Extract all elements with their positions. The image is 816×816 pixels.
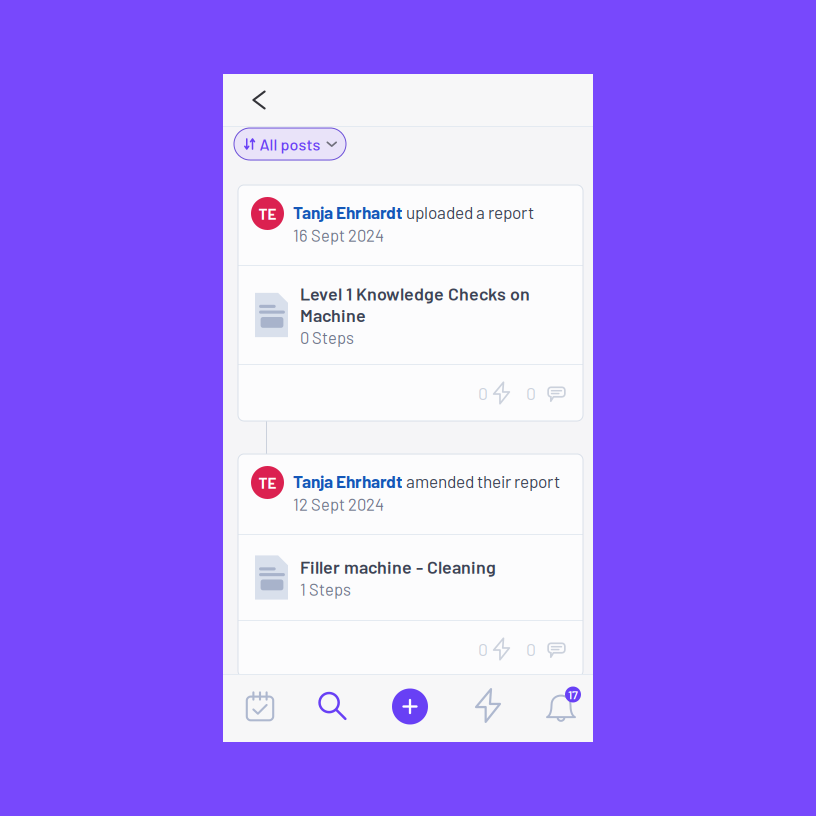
button[interactable]: Create [371, 675, 445, 742]
staticText: 17 [568, 687, 578, 702]
staticText: 0 [478, 382, 488, 403]
staticText: All posts [259, 134, 320, 154]
staticText: TE [258, 473, 276, 492]
staticText: 1 Steps [300, 579, 351, 599]
button[interactable]: Search [297, 675, 371, 742]
staticText: Tanja Ehrhardt uploaded a report [293, 202, 534, 222]
staticText: 0 [478, 638, 488, 659]
button[interactable]: All posts [234, 128, 346, 160]
staticText: Tanja Ehrhardt amended their report [293, 471, 560, 491]
button[interactable]: Notifications [519, 675, 593, 742]
staticText: 12 Sept 2024 [293, 494, 384, 514]
staticText: Filler machine - Cleaning [300, 556, 496, 577]
staticText: Level 1 Knowledge Checks on Machine [300, 283, 530, 325]
button[interactable]: Back [239, 78, 279, 122]
staticText: TE [258, 204, 276, 223]
staticText: 0 [526, 638, 536, 659]
button[interactable]: Tasks [223, 675, 297, 742]
staticText: 0 [526, 382, 536, 403]
staticText: 0 Steps [300, 327, 354, 347]
staticText: 16 Sept 2024 [293, 225, 384, 245]
button[interactable]: Activity [445, 675, 519, 742]
